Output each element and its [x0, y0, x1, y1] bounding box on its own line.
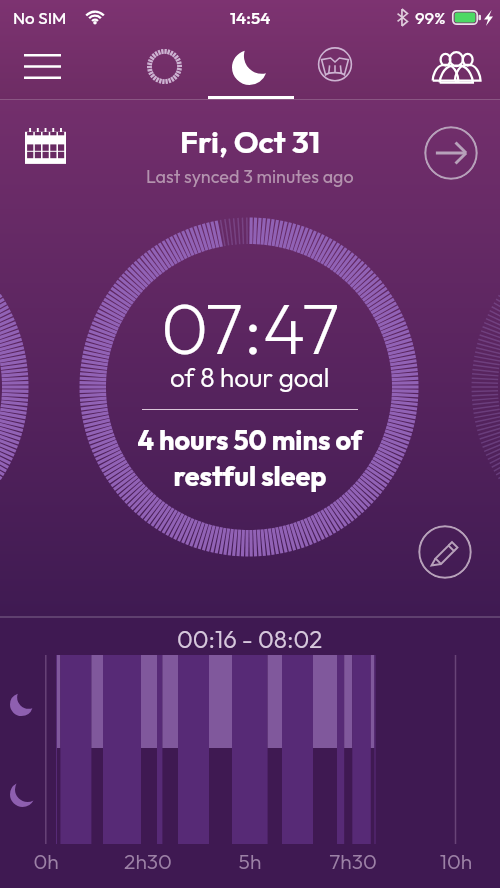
staticText: No SIM	[13, 7, 67, 28]
staticText: of 8 hour goal	[170, 361, 330, 394]
button[interactable]: Calendar	[18, 120, 66, 168]
button[interactable]: Menu	[0, 36, 95, 98]
staticText: 10h	[430, 848, 482, 874]
staticText: 14:54	[230, 7, 271, 28]
button[interactable]: Awards	[280, 36, 390, 98]
staticText: 07:47	[161, 282, 340, 373]
staticText: 4 hours 50 mins of restful sleep	[137, 423, 363, 493]
staticText: 7h30	[327, 848, 379, 874]
staticText: 2h30	[122, 848, 174, 874]
button[interactable]: Friends	[390, 36, 500, 98]
staticText: 00:16 - 08:02	[177, 624, 323, 654]
staticText: 5h	[224, 848, 276, 874]
staticText: 99%	[415, 7, 446, 28]
button[interactable]: Activity	[110, 36, 218, 98]
staticText: 0h	[20, 848, 72, 874]
staticText: Fri, Oct 31	[180, 122, 321, 161]
staticText: Last synced 3 minutes ago	[146, 165, 354, 188]
button[interactable]: Next day	[424, 126, 478, 180]
button[interactable]: Edit	[418, 525, 472, 579]
button[interactable]: Sleep	[218, 36, 280, 98]
